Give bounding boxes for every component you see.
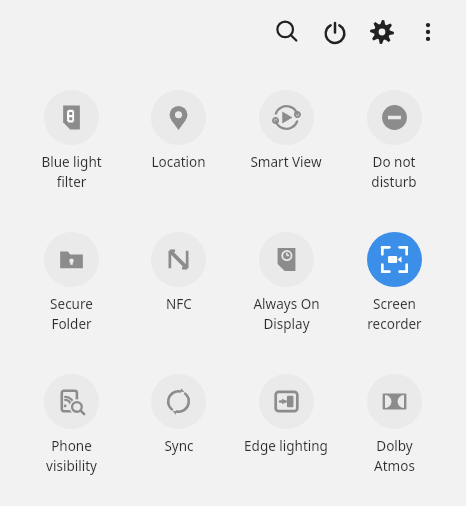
button[interactable]: Phone visibility (18, 374, 125, 475)
staticText: Always On Display (253, 295, 320, 333)
staticText: Phone visibility (46, 437, 97, 475)
staticText: Secure Folder (50, 295, 93, 333)
staticText: Screen recorder (367, 295, 422, 333)
staticText: Smart View (250, 153, 322, 171)
button[interactable]: More options (412, 16, 444, 48)
staticText: Dolby Atmos (374, 437, 415, 475)
button[interactable]: Secure Folder (18, 232, 125, 333)
button[interactable]: Do not disturb (340, 90, 448, 191)
button[interactable]: NFC (125, 232, 232, 313)
button[interactable]: Dolby Atmos (340, 374, 448, 475)
staticText: Edge lighting (244, 437, 328, 455)
button[interactable]: Power off (319, 16, 351, 48)
button[interactable]: Always On Display (232, 232, 340, 333)
button[interactable]: Sync (125, 374, 232, 455)
button[interactable]: Search (271, 16, 303, 48)
button[interactable]: Smart View (232, 90, 340, 171)
staticText: Blue light filter (41, 153, 102, 191)
staticText: Sync (164, 437, 194, 455)
staticText: Location (151, 153, 206, 171)
button[interactable]: Edge lighting (232, 374, 340, 455)
button[interactable]: Location (125, 90, 232, 171)
button[interactable]: Blue light filter (18, 90, 125, 191)
button[interactable]: Settings (366, 16, 398, 48)
staticText: Do not disturb (371, 153, 417, 191)
button[interactable]: Screen recorder (340, 232, 448, 333)
staticText: NFC (166, 295, 192, 313)
